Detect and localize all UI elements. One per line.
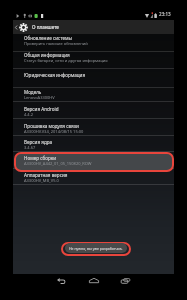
staticText: Статус батареи, сети и другая информация	[24, 58, 108, 63]
staticText: 3.4.67	[24, 145, 36, 150]
staticText: Номер сборки	[24, 155, 57, 161]
button[interactable]: Обновление системы	[13, 35, 174, 49]
staticText: Юридическая информация	[24, 72, 86, 78]
staticText: Модель	[24, 89, 42, 95]
button[interactable]: Версия ядра	[13, 139, 174, 153]
staticText: О планшете	[32, 24, 59, 30]
staticText: Не нужно, вы уже разработчик.	[69, 246, 123, 251]
button[interactable]: Back	[55, 274, 68, 287]
staticText: A3300HV.V34, 2014/08/15 15:00	[24, 129, 84, 134]
staticText: Версия ядра	[24, 139, 53, 145]
staticText: Проверить наличие обновлений	[24, 41, 88, 46]
button[interactable]: Модель	[13, 89, 174, 103]
button[interactable]: Версия Android	[13, 106, 174, 120]
button[interactable]: Юридическая информация	[13, 72, 174, 80]
button[interactable]: Recent apps	[119, 274, 132, 287]
staticText: 4.4.2	[24, 112, 34, 117]
staticText: LenovoA3300HV	[24, 95, 55, 100]
button[interactable]: Back	[13, 20, 174, 34]
button[interactable]: Не нужно, вы уже разработчик.	[65, 243, 127, 253]
button[interactable]: Общая информация	[13, 52, 174, 66]
staticText: A3300HV_A442_01_05_150820_ROW	[24, 161, 92, 166]
staticText: Прошивка модуля связи	[24, 123, 79, 129]
button[interactable]: Аппаратная версия	[13, 172, 174, 186]
staticText: 23:13	[159, 11, 171, 17]
button[interactable]: Номер сборки	[13, 155, 174, 169]
other: Back	[14, 24, 18, 31]
staticText: Обновление системы	[24, 35, 73, 41]
button[interactable]: Прошивка модуля связи	[13, 123, 174, 137]
staticText: A3300HV_MB_V5.0	[24, 178, 59, 183]
staticText: Общая информация	[24, 52, 70, 58]
staticText: Аппаратная версия	[24, 172, 68, 178]
button[interactable]: Home	[87, 274, 100, 287]
staticText: Версия Android	[24, 106, 59, 112]
